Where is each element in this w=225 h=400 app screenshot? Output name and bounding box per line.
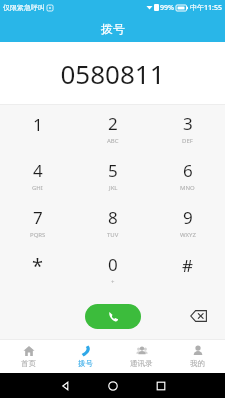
staticText: 拨号 bbox=[78, 359, 93, 368]
staticText: 中午11:55 bbox=[190, 3, 222, 13]
button[interactable]: 8 bbox=[75, 199, 150, 246]
button[interactable]: # bbox=[150, 246, 225, 293]
button[interactable]: 1 bbox=[0, 105, 75, 152]
staticText: + bbox=[111, 278, 115, 286]
staticText: JKL bbox=[109, 184, 118, 192]
staticText: MNO bbox=[180, 184, 195, 192]
staticText: 0580811 bbox=[60, 56, 165, 91]
staticText: PQRS bbox=[30, 231, 46, 239]
staticText: 1 bbox=[33, 113, 43, 136]
staticText: WXYZ bbox=[180, 231, 196, 239]
staticText: TUV bbox=[107, 231, 119, 239]
button[interactable]: Back bbox=[41, 373, 89, 398]
button[interactable]: Call bbox=[85, 304, 141, 329]
button[interactable]: Delete bbox=[185, 303, 211, 329]
staticText: 我的 bbox=[190, 359, 205, 368]
button[interactable]: 3 bbox=[150, 105, 225, 152]
staticText: 0 bbox=[108, 253, 118, 276]
staticText: 4 bbox=[33, 159, 43, 182]
button[interactable]: Home bbox=[89, 373, 137, 398]
staticText: 9 bbox=[183, 206, 193, 229]
staticText: 首页 bbox=[21, 359, 36, 368]
button[interactable]: 7 bbox=[0, 199, 75, 246]
button[interactable]: 拨号 bbox=[57, 340, 113, 373]
staticText: * bbox=[32, 252, 44, 279]
staticText: # bbox=[182, 254, 193, 277]
staticText: 7 bbox=[33, 206, 43, 229]
staticText: ABC bbox=[107, 137, 119, 145]
staticText: 仅限紧急呼叫 bbox=[3, 3, 45, 12]
staticText: 99% bbox=[160, 3, 174, 13]
button[interactable]: Recents bbox=[137, 373, 185, 398]
staticText: GHI bbox=[32, 184, 43, 192]
button[interactable]: 首页 bbox=[0, 340, 57, 373]
button[interactable]: 5 bbox=[75, 152, 150, 199]
staticText: 8 bbox=[108, 206, 118, 229]
staticText: 2 bbox=[108, 112, 118, 135]
staticText: 5 bbox=[108, 159, 118, 182]
button[interactable]: 4 bbox=[0, 152, 75, 199]
staticText: DEF bbox=[182, 137, 193, 145]
button[interactable]: * bbox=[0, 246, 75, 293]
button[interactable]: 6 bbox=[150, 152, 225, 199]
staticText: 通讯录 bbox=[130, 359, 153, 368]
button[interactable]: 我的 bbox=[169, 340, 225, 373]
staticText: 拨号 bbox=[101, 21, 125, 36]
button[interactable]: 2 bbox=[75, 105, 150, 152]
staticText: 6 bbox=[183, 159, 193, 182]
button[interactable]: 通讯录 bbox=[113, 340, 169, 373]
staticText: 3 bbox=[183, 112, 193, 135]
button[interactable]: 9 bbox=[150, 199, 225, 246]
button[interactable]: 0 bbox=[75, 246, 150, 293]
